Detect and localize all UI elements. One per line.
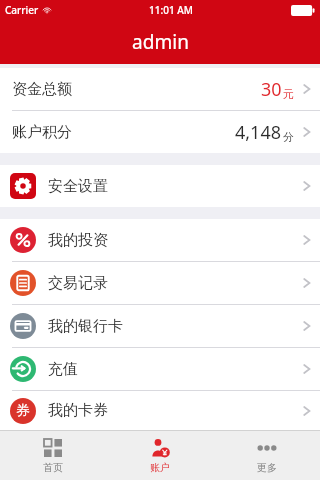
button[interactable]: 首页 — [0, 431, 106, 480]
button[interactable]: 账户积分 — [0, 111, 320, 153]
staticText: 资金总额 — [12, 80, 72, 99]
staticText: 交易记录 — [48, 274, 108, 293]
staticText: 我的银行卡 — [48, 317, 123, 336]
button[interactable]: 交易记录 — [0, 262, 320, 304]
staticText: 元 — [283, 87, 294, 101]
staticText: 11:01 AM — [149, 3, 193, 17]
staticText: 我的投资 — [48, 231, 108, 250]
staticText: 30 — [261, 77, 282, 102]
staticText: 首页 — [43, 461, 63, 474]
button[interactable]: 资金总额 — [0, 68, 320, 110]
button[interactable]: 账户 — [106, 431, 213, 480]
button[interactable]: 券 — [0, 391, 320, 430]
staticText: 账户 — [150, 461, 170, 474]
staticText: 账户积分 — [12, 123, 72, 142]
staticText: Carrier — [5, 3, 39, 17]
staticText: 分 — [283, 130, 294, 144]
staticText: 安全设置 — [48, 177, 108, 196]
button[interactable]: 安全设置 — [0, 165, 320, 207]
button[interactable]: 我的银行卡 — [0, 305, 320, 347]
staticText: 我的卡券 — [48, 401, 108, 420]
staticText: 充值 — [48, 360, 78, 379]
staticText: 券 — [16, 402, 30, 420]
staticText: 更多 — [257, 461, 277, 474]
staticText: admin — [132, 29, 189, 55]
staticText: 4,148 — [235, 120, 282, 145]
button[interactable]: 更多 — [213, 431, 320, 480]
button[interactable]: 我的投资 — [0, 219, 320, 261]
button[interactable]: 充值 — [0, 348, 320, 390]
